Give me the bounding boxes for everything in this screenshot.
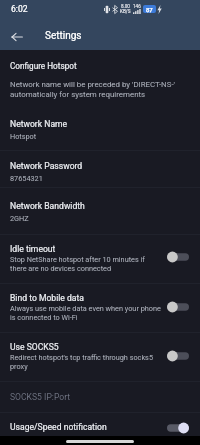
staticText: 87 — [146, 6, 153, 13]
staticText: Use SOCKS5 — [10, 342, 59, 352]
staticText: Redirect hotspot's tcp traffic through s… — [10, 353, 162, 371]
staticText: SOCKS5 IP:Port — [10, 392, 71, 402]
staticText: Network Password — [10, 161, 83, 171]
button[interactable]: Switch off — [164, 345, 192, 367]
staticText: Usage/Speed notification — [10, 422, 107, 432]
button[interactable]: Idle timeout — [0, 235, 200, 283]
staticText: Network name will be preceded by 'DIRECT… — [10, 80, 175, 99]
staticText: 6:02 — [11, 4, 28, 14]
button[interactable]: Network Name — [0, 110, 200, 150]
button[interactable]: Network Password — [0, 151, 200, 187]
staticText: Hotspot — [10, 132, 37, 141]
button[interactable]: Network Bandwidth — [0, 188, 200, 234]
staticText: Always use mobile data even when your ph… — [10, 304, 162, 322]
staticText: Network Bandwidth — [10, 201, 85, 211]
staticText: 2GHZ — [10, 214, 29, 223]
button[interactable]: Switch off — [164, 296, 192, 318]
staticText: Bind to Mobile data — [10, 293, 85, 303]
staticText: KB/S — [120, 9, 131, 14]
staticText: Network Name — [10, 119, 68, 129]
button[interactable]: Use SOCKS5 — [0, 333, 200, 377]
button[interactable]: Back — [9, 29, 25, 45]
staticText: Settings — [45, 30, 82, 42]
staticText: 8.00 — [121, 4, 130, 9]
button[interactable]: Switch on — [164, 417, 192, 439]
staticText: 87654321 — [10, 174, 43, 183]
button[interactable]: Switch off — [164, 246, 192, 268]
staticText: Idle timeout — [10, 244, 56, 254]
staticText: 146 — [133, 4, 141, 9]
staticText: Stop NetShare hotspot after 10 minutes i… — [10, 255, 162, 273]
staticText: Configure Hotspot — [10, 61, 77, 71]
button[interactable]: Bind to Mobile data — [0, 284, 200, 332]
button[interactable]: SOCKS5 IP:Port — [0, 382, 200, 412]
button[interactable]: Usage/Speed notification — [0, 413, 200, 436]
